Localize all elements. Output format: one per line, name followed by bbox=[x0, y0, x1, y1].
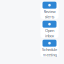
staticText: meeting bbox=[42, 52, 56, 57]
button[interactable]: Review alerts bbox=[40, 2, 58, 19]
staticText: Open bbox=[45, 28, 54, 33]
staticText: inbox bbox=[45, 33, 54, 38]
staticText: alerts bbox=[44, 14, 54, 19]
button[interactable]: Open inbox bbox=[40, 21, 58, 38]
button[interactable]: Schedule meeting bbox=[40, 40, 58, 57]
staticText: Review bbox=[43, 9, 55, 14]
staticText: Schedule bbox=[42, 47, 57, 52]
